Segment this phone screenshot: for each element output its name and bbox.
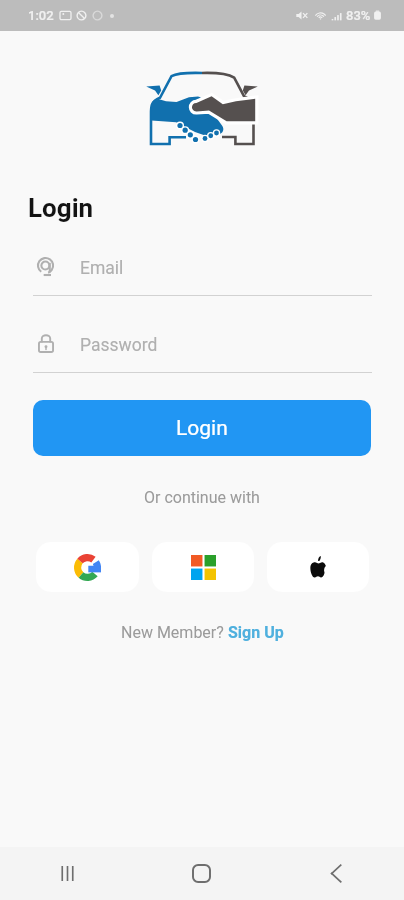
button[interactable]: Recent apps — [0, 847, 134, 900]
staticText: Password — [80, 335, 158, 356]
staticText: Login — [28, 193, 94, 223]
staticText: 83% — [346, 8, 371, 23]
staticText: Or continue with — [144, 488, 260, 507]
button[interactable]: Back — [269, 847, 404, 900]
button[interactable]: Sign in with Apple — [267, 542, 369, 592]
staticText: New Member? — [121, 623, 228, 642]
button[interactable]: Home — [134, 847, 269, 900]
button[interactable]: Sign in with Google — [36, 542, 139, 592]
button[interactable]: Login — [33, 400, 371, 456]
staticText: Login — [176, 416, 228, 441]
staticText: 1:02 — [28, 8, 54, 23]
staticText: Email — [80, 258, 124, 279]
button[interactable]: Sign Up — [228, 623, 284, 642]
button[interactable]: Sign in with Microsoft — [152, 542, 254, 592]
